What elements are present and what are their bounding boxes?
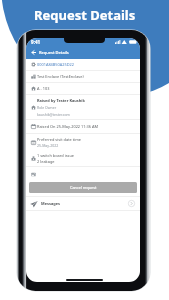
- staticText: A - 103: [37, 86, 50, 91]
- staticText: Raised by Tester Kaushik: [37, 98, 85, 103]
- staticText: 1 switch board issue: [37, 153, 75, 158]
- staticText: Role Owner: [37, 105, 57, 110]
- button[interactable]: Test Enclave (TestEnclave): [30, 71, 136, 82]
- button[interactable]: Back: [30, 49, 37, 56]
- button[interactable]: Cancel request: [29, 182, 137, 193]
- staticText: Messages: [41, 201, 60, 206]
- button[interactable]: Messages: [30, 197, 135, 210]
- staticText: Preferred visit date time: [37, 137, 82, 142]
- staticText: Request Details: [39, 50, 69, 55]
- button[interactable]: Raised by Tester Kaushik: [30, 95, 136, 119]
- button[interactable]: 0001A84B50A25D22: [30, 59, 136, 70]
- staticText: 0001A84B50A25D22: [37, 62, 75, 67]
- button[interactable]: A - 103: [30, 83, 136, 94]
- staticText: Request Details: [34, 6, 136, 24]
- staticText: Raised On 25-May-2022 11:36 AM: [37, 124, 99, 129]
- button[interactable]: 1 switch board issue: [30, 150, 136, 166]
- staticText: kaushik@tester.com: [37, 112, 70, 117]
- staticText: Test Enclave (TestEnclave): [37, 74, 84, 79]
- button[interactable]: Raised On 25-May-2022 11:36 AM: [30, 120, 136, 133]
- button[interactable]: Open messages: [128, 200, 135, 207]
- staticText: 9:41: [31, 39, 41, 45]
- staticText: 2 leakage: [37, 159, 55, 164]
- staticText: 25-May-2022: [37, 143, 59, 148]
- staticText: Cancel request: [70, 185, 97, 190]
- button[interactable]: Preferred visit date time: [30, 134, 136, 150]
